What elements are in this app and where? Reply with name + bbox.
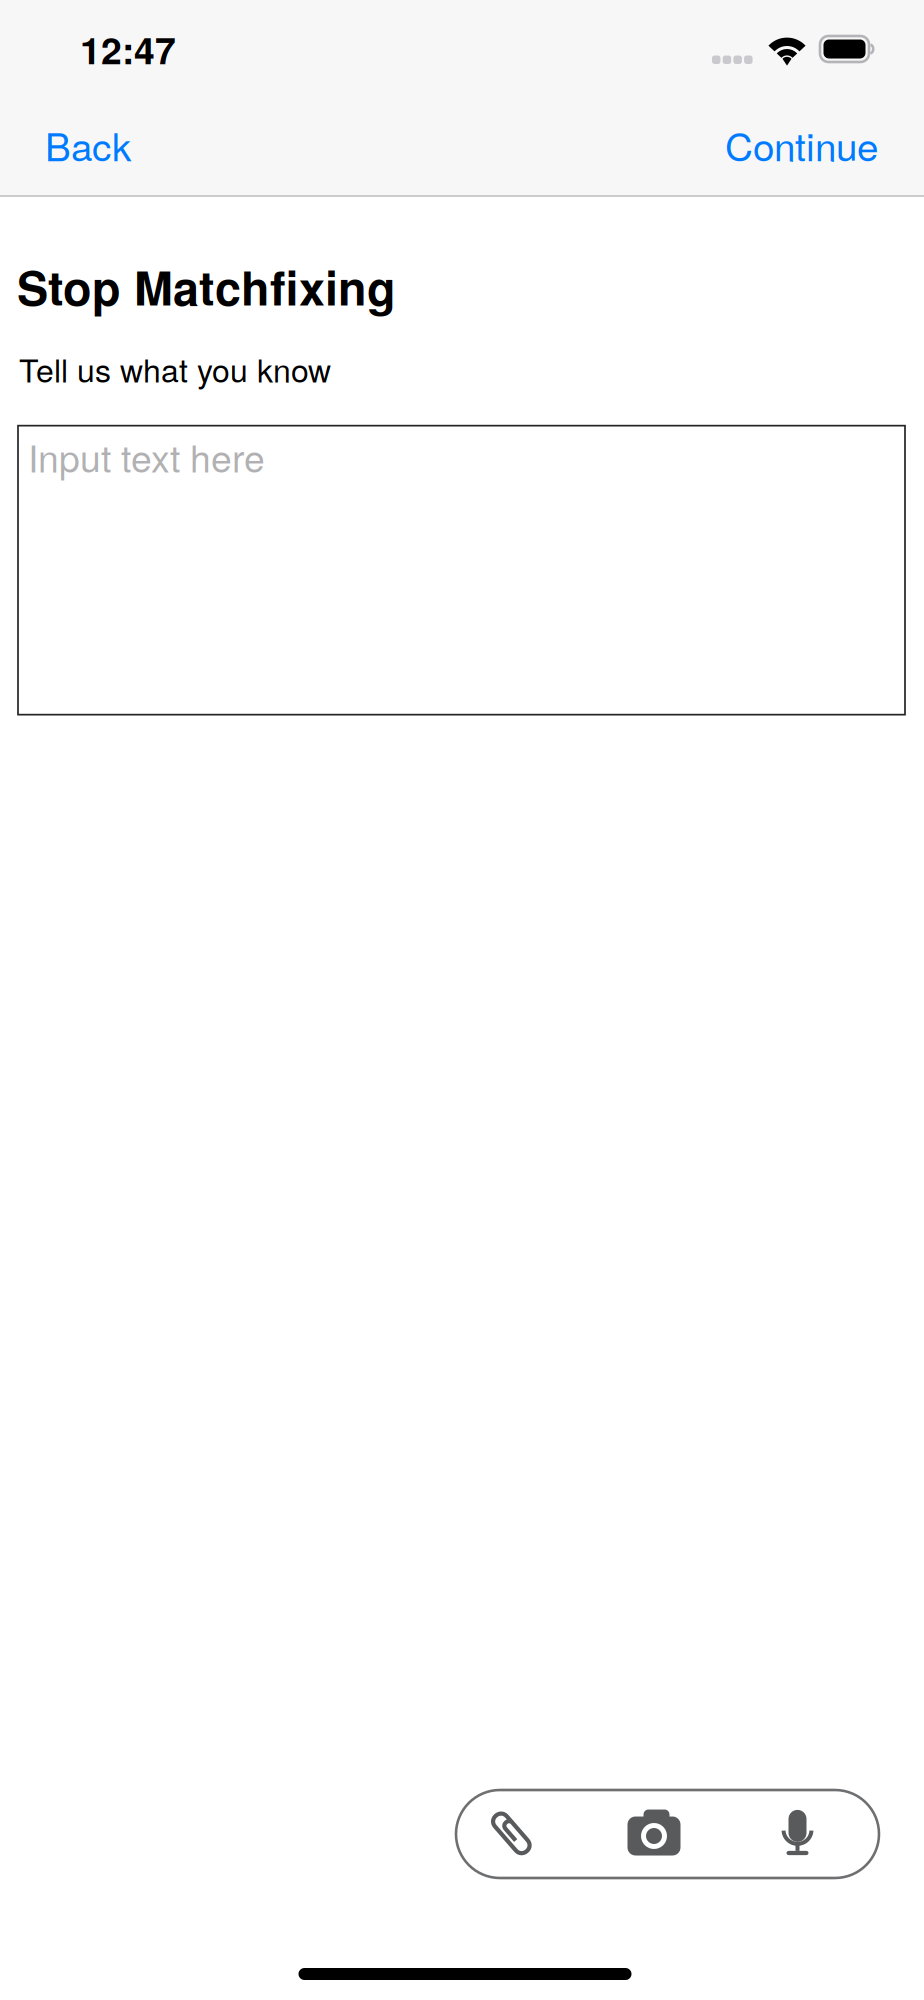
staticText: 12:47 — [80, 22, 176, 76]
button[interactable]: Attach file — [456, 1790, 597, 1878]
staticText: Continue — [725, 117, 878, 172]
button[interactable]: Back — [0, 105, 176, 192]
button[interactable]: Record audio — [738, 1790, 879, 1878]
button[interactable]: Continue — [679, 105, 924, 192]
button[interactable]: Input text here — [18, 426, 905, 715]
staticText: Back — [45, 117, 131, 172]
staticText: Tell us what you know — [19, 346, 331, 392]
staticText: Input text here — [28, 430, 265, 483]
staticText: Stop Matchfixing — [17, 253, 396, 320]
button[interactable]: Take photo — [597, 1790, 738, 1878]
